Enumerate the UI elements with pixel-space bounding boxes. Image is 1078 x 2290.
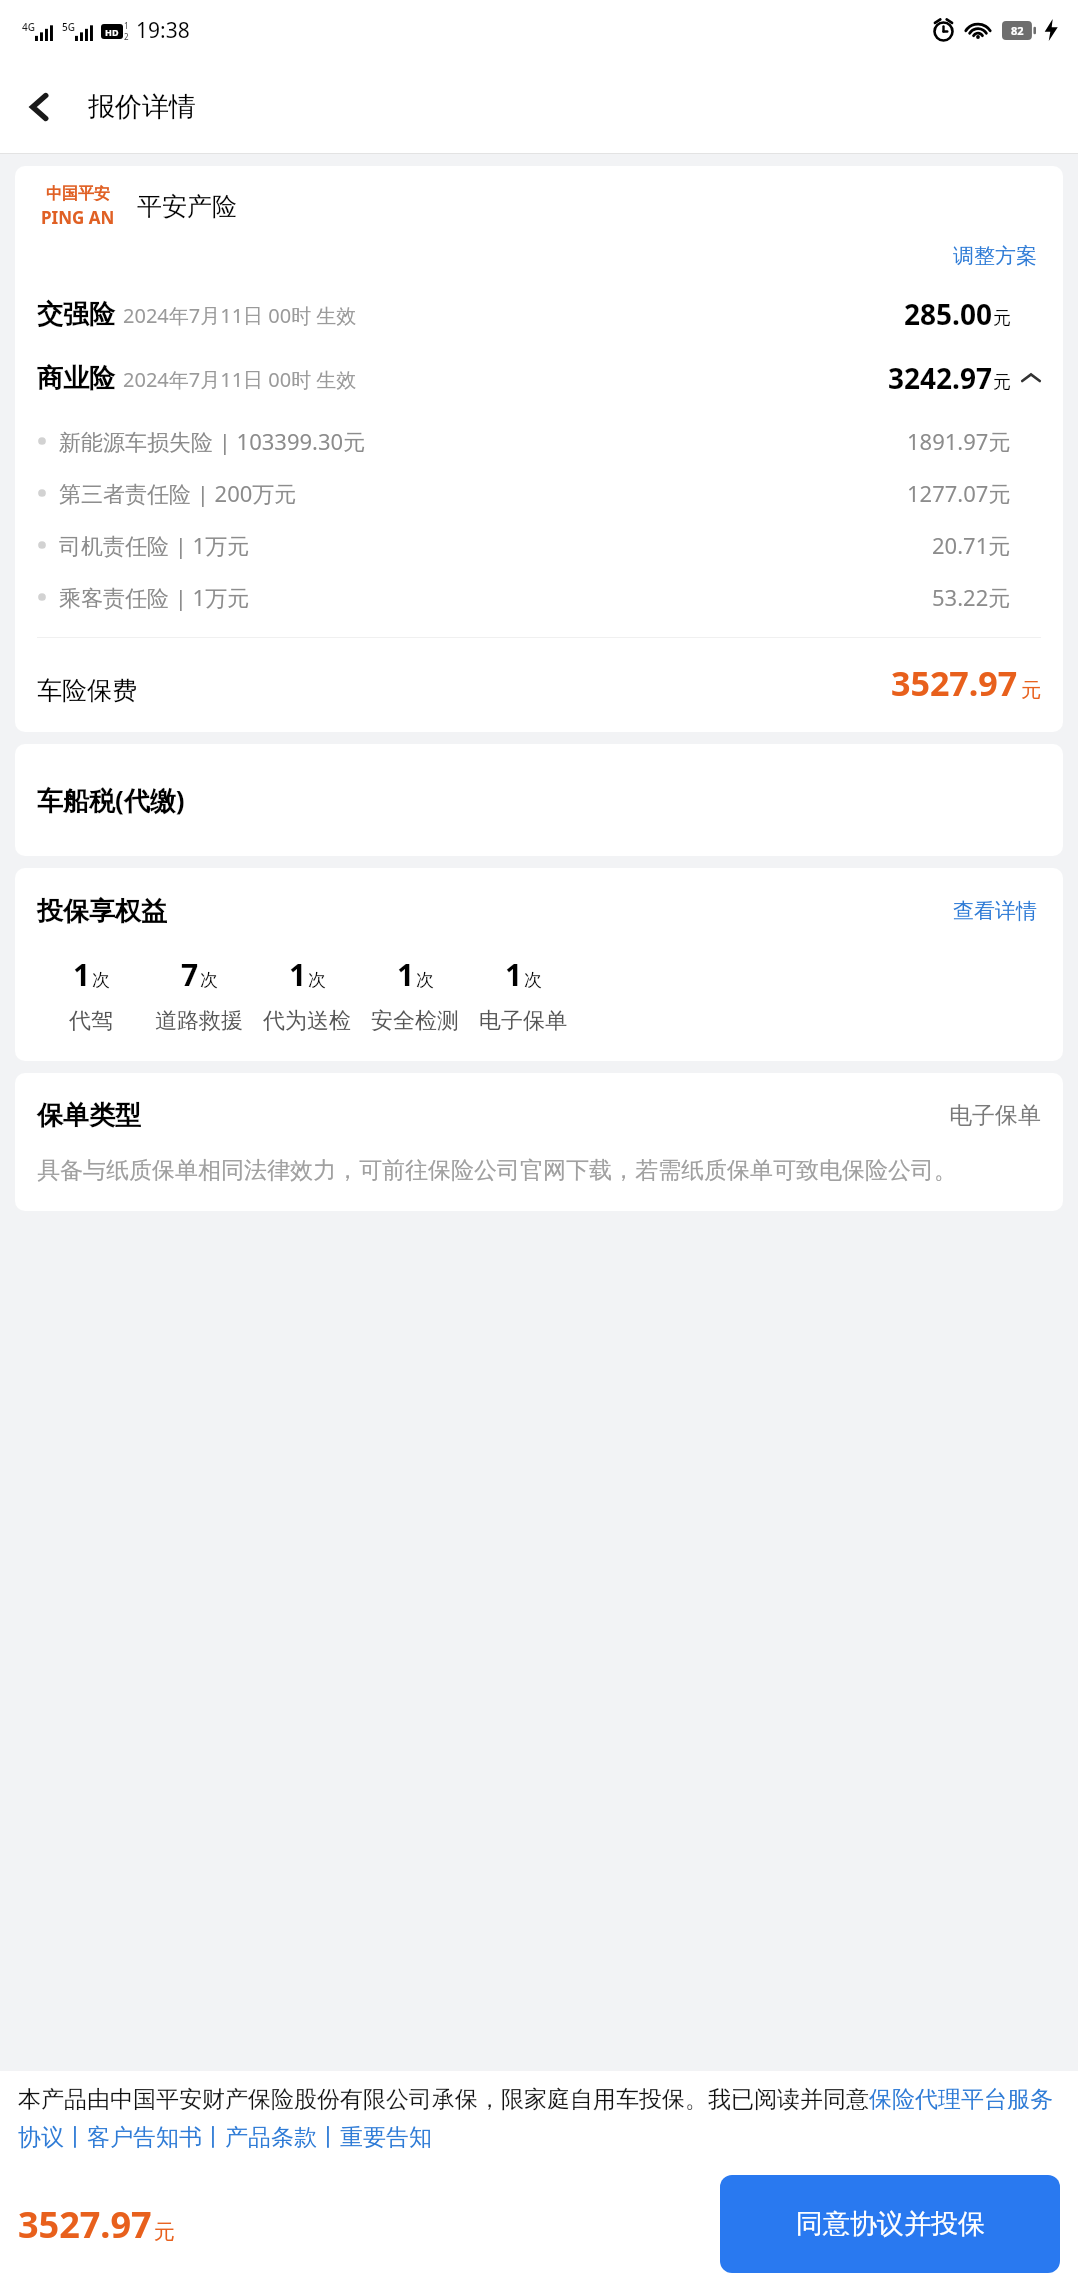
staticText: 次 (524, 969, 542, 992)
staticText: 2 (124, 31, 129, 42)
staticText: 1 (505, 954, 523, 995)
staticText: 次 (200, 969, 218, 992)
staticText: 本产品由中国平安财产保险股份有限公司承保，限家庭自用车投保。我已阅读并同意保险代… (18, 2085, 1060, 2152)
staticText: 元 (993, 371, 1011, 394)
staticText: 乘客责任险 | 1万元 (59, 582, 250, 612)
staticText: HD (105, 26, 119, 38)
staticText: 代驾 (69, 1007, 113, 1035)
button[interactable]: 调整方案 (949, 239, 1041, 273)
staticText: 1 (73, 954, 91, 995)
staticText: PING AN (41, 206, 115, 229)
button[interactable]: 查看详情 (949, 894, 1041, 928)
staticText: 1277.07元 (907, 478, 1011, 508)
staticText: 3527.97 (891, 660, 1018, 706)
staticText: 3527.97 (18, 2200, 152, 2249)
staticText: 元 (993, 307, 1011, 330)
staticText: 保单类型 (37, 1099, 141, 1132)
staticText: 7 (181, 954, 199, 995)
button[interactable]: 商业险 (15, 359, 1063, 397)
staticText: 1 (289, 954, 307, 995)
staticText: 次 (308, 969, 326, 992)
staticText: 2024年7月11日 00时 生效 (123, 302, 357, 329)
staticText: 车船税(代缴) (37, 782, 185, 818)
staticText: 司机责任险 | 1万元 (59, 530, 250, 560)
staticText: 次 (92, 969, 110, 992)
staticText: 商业险 (37, 362, 115, 395)
staticText: 电子保单 (949, 1101, 1041, 1130)
staticText: 元 (154, 2219, 175, 2245)
staticText: 具备与纸质保单相同法律效力，可前往保险公司官网下载，若需纸质保单可致电保险公司。 (37, 1156, 1041, 1185)
staticText: 新能源车损失险 | 103399.30元 (59, 426, 366, 456)
staticText: 19:38 (136, 16, 190, 45)
staticText: 道路救援 (155, 1007, 243, 1035)
staticText: 82 (1011, 23, 1024, 38)
staticText: 投保享权益 (37, 895, 167, 928)
staticText: 4G (22, 20, 35, 34)
staticText: 报价详情 (88, 90, 196, 124)
staticText: 20.71元 (932, 530, 1011, 560)
button[interactable]: 1 (469, 954, 577, 1035)
button[interactable]: 同意协议并投保 (720, 2175, 1060, 2273)
staticText: 电子保单 (479, 1007, 567, 1035)
staticText: 安全检测 (371, 1007, 459, 1035)
staticText: 代为送检 (263, 1007, 351, 1035)
staticText: 1 (124, 20, 129, 31)
button[interactable]: Back (8, 75, 72, 139)
button[interactable]: 车船税(代缴) (15, 744, 1063, 856)
button[interactable]: 交强险 (15, 295, 1063, 333)
button[interactable]: 1 (361, 954, 469, 1035)
staticText: 2024年7月11日 00时 生效 (123, 366, 357, 393)
staticText: 1 (397, 954, 415, 995)
staticText: 元 (1021, 678, 1041, 703)
button[interactable]: 7 (145, 954, 253, 1035)
staticText: 交强险 (37, 298, 115, 331)
staticText: 3242.97 (888, 359, 992, 397)
staticText: 1891.97元 (907, 426, 1011, 456)
button[interactable]: 1 (37, 954, 145, 1035)
staticText: 次 (416, 969, 434, 992)
staticText: 53.22元 (932, 582, 1011, 612)
staticText: 5G (62, 20, 75, 34)
button[interactable]: 1 (253, 954, 361, 1035)
staticText: 中国平安 (46, 184, 110, 204)
staticText: 调整方案 (953, 243, 1037, 269)
staticText: 平安产险 (137, 191, 237, 222)
staticText: 第三者责任险 | 200万元 (59, 478, 297, 508)
staticText: 车险保费 (37, 675, 137, 706)
staticText: 285.00 (904, 295, 992, 333)
staticText: 查看详情 (953, 898, 1037, 924)
staticText: 同意协议并投保 (796, 2207, 985, 2241)
